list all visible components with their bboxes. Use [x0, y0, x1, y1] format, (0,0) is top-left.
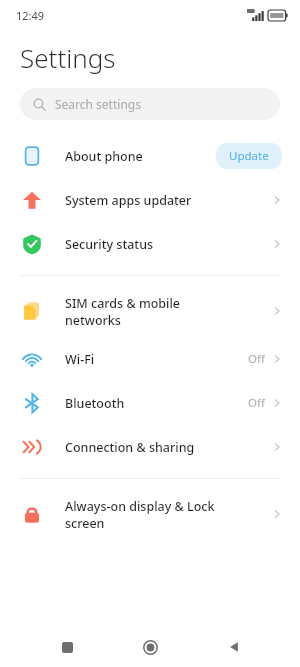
staticText: Off: [248, 351, 265, 367]
staticText: SIM cards & mobile networks: [65, 295, 272, 328]
button[interactable]: Home: [133, 630, 167, 664]
staticText: Update: [229, 148, 269, 164]
staticText: Bluetooth: [65, 395, 248, 412]
button[interactable]: Back: [217, 630, 251, 664]
staticText: 12:49: [16, 8, 45, 23]
button[interactable]: About phone: [0, 134, 300, 178]
staticText: Connection & sharing: [65, 439, 272, 456]
button[interactable]: Connection & sharing: [0, 425, 300, 469]
staticText: System apps updater: [65, 192, 272, 209]
button[interactable]: Security status: [0, 222, 300, 266]
button[interactable]: Bluetooth: [0, 381, 300, 425]
button[interactable]: System apps updater: [0, 178, 300, 222]
staticText: Security status: [65, 236, 272, 253]
button[interactable]: Update: [216, 143, 282, 169]
staticText: Wi-Fi: [65, 351, 248, 368]
staticText: Always-on display & Lock screen: [65, 498, 272, 531]
staticText: About phone: [65, 148, 216, 165]
button[interactable]: Always-on display & Lock screen: [0, 488, 300, 540]
staticText: Search settings: [55, 96, 141, 112]
staticText: Settings: [20, 40, 116, 75]
button[interactable]: Recent apps: [50, 630, 84, 664]
staticText: Off: [248, 395, 265, 411]
button[interactable]: Wi-Fi: [0, 337, 300, 381]
button[interactable]: Search settings: [20, 88, 280, 120]
button[interactable]: SIM cards & mobile networks: [0, 285, 300, 337]
